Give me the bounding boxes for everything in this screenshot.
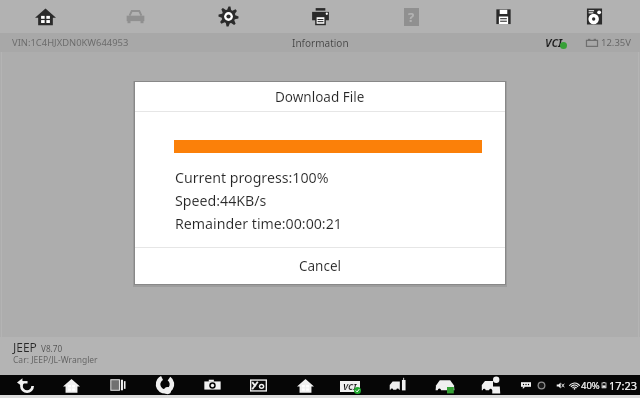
button[interactable]: Recent apps	[106, 375, 130, 395]
button[interactable]: System status	[521, 375, 638, 395]
button[interactable]: Vehicle	[433, 375, 457, 395]
button[interactable]: VCI connection and battery voltage	[545, 33, 631, 52]
button[interactable]: Data Logging	[578, 0, 610, 33]
staticText: Cancel	[299, 257, 342, 275]
button[interactable]: Save	[487, 0, 519, 33]
button[interactable]: Home	[59, 375, 83, 395]
staticText: VIN:1C4HJXDN0KW644953	[12, 36, 129, 49]
staticText: 40%	[581, 379, 600, 392]
button[interactable]: Print	[304, 0, 336, 33]
staticText: JEEP	[13, 339, 37, 355]
staticText: Download File	[275, 88, 365, 106]
button[interactable]: Settings	[212, 0, 244, 33]
button[interactable]: Vehicle	[119, 0, 151, 33]
button[interactable]: Autel Home	[293, 375, 317, 395]
staticText: Current progress:100%	[175, 168, 329, 187]
staticText: VCI	[343, 381, 357, 392]
button[interactable]: Cancel	[135, 248, 505, 284]
staticText: Information	[292, 36, 349, 50]
button[interactable]: Camera	[200, 375, 224, 395]
staticText: Speed:44KB/s	[175, 191, 267, 210]
button[interactable]: Assistant	[153, 375, 177, 395]
staticText: VCI	[545, 35, 563, 50]
button[interactable]: Back	[13, 375, 37, 395]
button[interactable]: VCI status	[338, 375, 362, 395]
button[interactable]: Home	[29, 0, 61, 33]
button[interactable]: Screenshot	[246, 375, 270, 395]
button[interactable]: Help	[395, 0, 427, 33]
staticText: V8.70	[41, 343, 63, 354]
staticText: Car: JEEP/JL-Wrangler	[13, 354, 98, 366]
staticText: 17:23	[609, 378, 638, 393]
staticText: ?	[408, 8, 415, 26]
button[interactable]: Account	[479, 375, 503, 395]
staticText: 12.35V	[601, 36, 631, 49]
button[interactable]: Remote	[386, 375, 410, 395]
staticText: Remainder time:00:00:21	[175, 214, 342, 233]
